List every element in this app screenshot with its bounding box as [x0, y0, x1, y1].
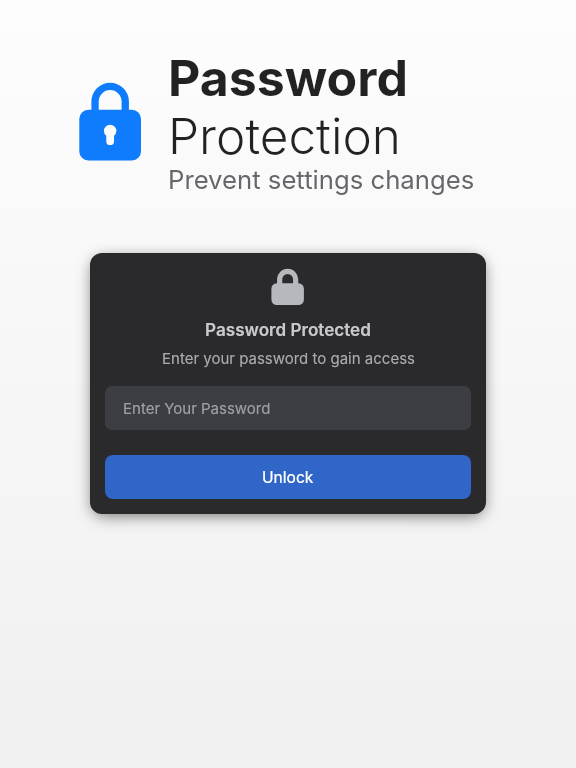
staticText: Prevent settings changes — [168, 164, 475, 195]
staticText: Password — [168, 48, 408, 108]
staticText: Unlock — [262, 468, 314, 487]
button[interactable]: Unlock — [105, 455, 471, 499]
other: Password protection lock — [75, 78, 145, 164]
staticText: Enter your password to gain access — [162, 349, 415, 367]
button[interactable]: Enter Your Password — [105, 386, 471, 430]
other: Locked — [270, 265, 306, 305]
staticText: Protection — [168, 106, 401, 166]
staticText: Enter Your Password — [123, 399, 271, 417]
staticText: Password Protected — [205, 319, 371, 340]
